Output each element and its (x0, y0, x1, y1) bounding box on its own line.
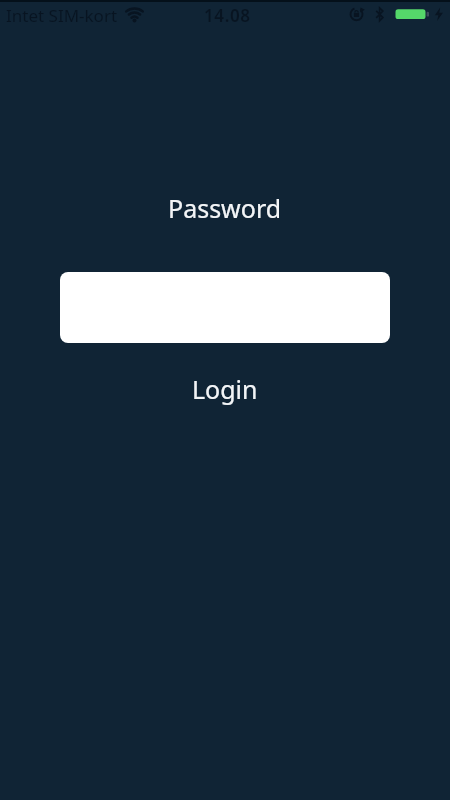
staticText: Password (168, 191, 282, 225)
staticText: Intet SIM-kort (6, 4, 118, 27)
button[interactable] (60, 272, 390, 343)
staticText: 14.08 (204, 4, 251, 27)
button[interactable]: Login (160, 371, 290, 407)
staticText: Login (192, 372, 258, 406)
